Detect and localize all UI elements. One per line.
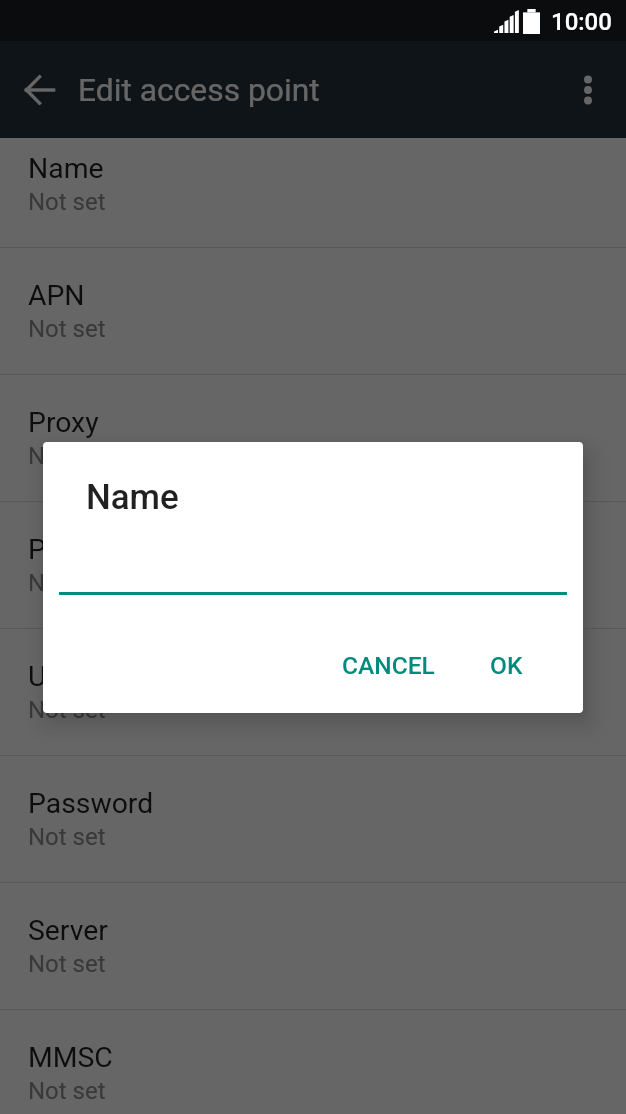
button[interactable]: Server: [0, 883, 626, 1009]
button[interactable]: Username: [0, 629, 626, 755]
button[interactable]: Port: [0, 502, 626, 628]
staticText: Not set: [28, 823, 106, 851]
button[interactable]: Navigate up: [0, 41, 80, 138]
button[interactable]: APN: [0, 248, 626, 374]
staticText: Server: [28, 914, 108, 947]
staticText: Not set: [28, 442, 106, 470]
button[interactable]: OK: [476, 635, 537, 696]
staticText: Not set: [28, 1077, 106, 1105]
staticText: Not set: [28, 950, 106, 978]
staticText: Not set: [28, 569, 106, 597]
staticText: APN: [28, 279, 85, 312]
staticText: CANCEL: [342, 651, 435, 680]
button[interactable]: Proxy: [0, 375, 626, 501]
staticText: Edit access point: [78, 71, 320, 108]
staticText: Not set: [28, 188, 106, 216]
button[interactable]: More options: [549, 41, 626, 138]
staticText: Not set: [28, 696, 106, 724]
button[interactable]: Name text field: [59, 558, 567, 595]
staticText: Port: [28, 533, 82, 566]
staticText: Username: [28, 660, 157, 693]
staticText: Password: [28, 787, 154, 820]
button[interactable]: CANCEL: [328, 635, 449, 696]
button[interactable]: Password: [0, 756, 626, 882]
staticText: Proxy: [28, 406, 99, 439]
staticText: 10:00: [551, 8, 612, 36]
staticText: MMSC: [28, 1041, 113, 1074]
staticText: OK: [490, 651, 523, 680]
button[interactable]: MMSC: [0, 1010, 626, 1114]
button[interactable]: Name: [0, 138, 626, 247]
staticText: Name: [86, 477, 179, 518]
staticText: Not set: [28, 315, 106, 343]
staticText: Name: [28, 152, 104, 185]
